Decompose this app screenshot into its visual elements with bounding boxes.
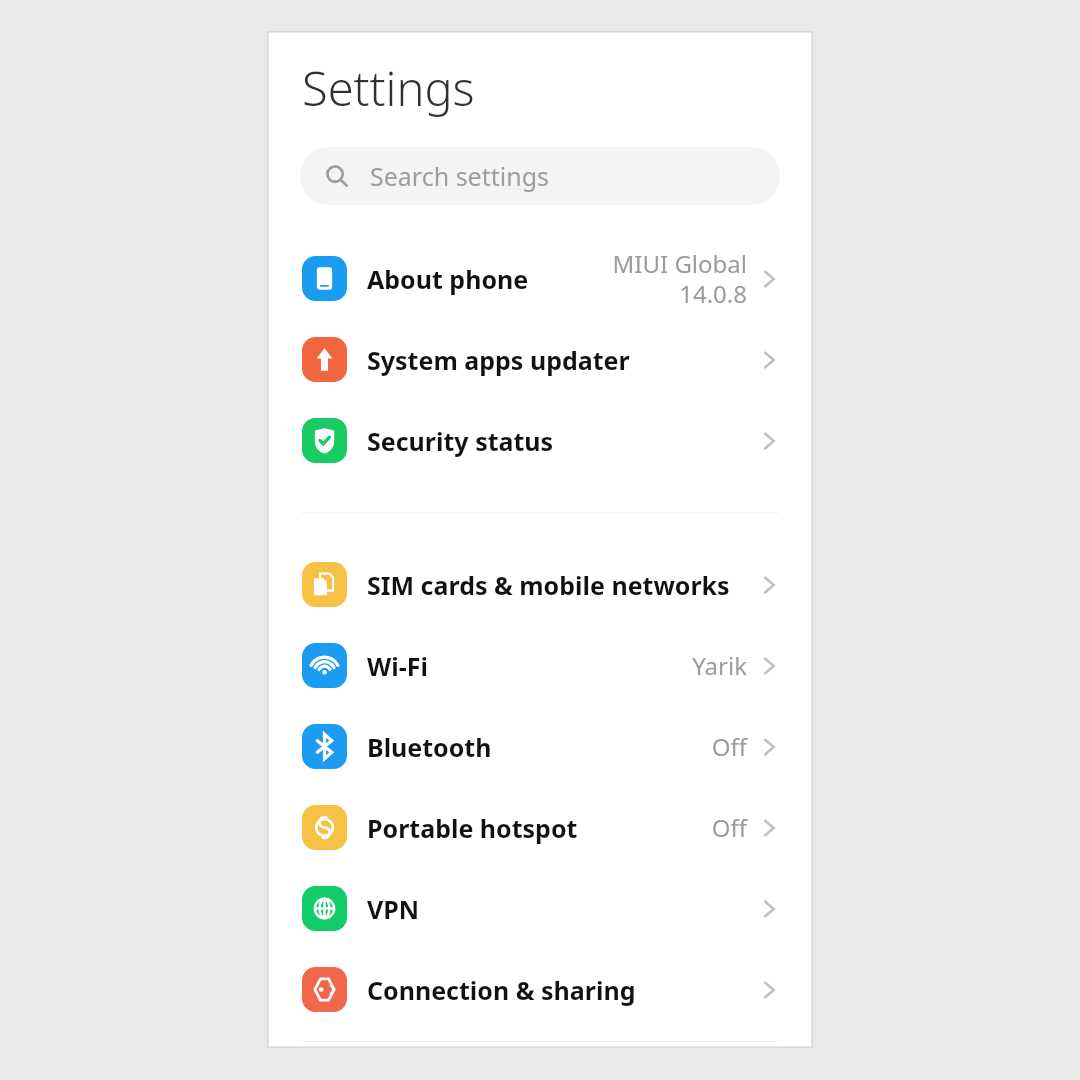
staticText: About phone [367,262,529,296]
staticText: Bluetooth [367,730,492,764]
button[interactable]: Security status [267,400,813,481]
button[interactable]: Connection & sharing [267,949,813,1030]
button[interactable]: Portable hotspot [267,787,813,868]
staticText: VPN [367,892,420,926]
staticText: System apps updater [367,343,630,377]
other: Search [325,164,349,188]
staticText: Wi-Fi [367,649,428,683]
button[interactable]: VPN [267,868,813,949]
staticText: MIUI Global 14.0.8 [612,247,747,310]
button[interactable]: SIM cards & mobile networks [267,544,813,625]
staticText: SIM cards & mobile networks [367,568,730,602]
button[interactable]: Search [300,147,780,205]
staticText: Search settings [370,159,550,193]
button[interactable]: System apps updater [267,319,813,400]
staticText: Yarik [692,649,747,682]
staticText: Off [711,811,747,844]
button[interactable]: Bluetooth [267,706,813,787]
staticText: Security status [367,424,554,458]
staticText: Portable hotspot [367,811,578,845]
button[interactable]: About phone [267,238,813,319]
staticText: Settings [302,56,475,120]
staticText: Connection & sharing [367,973,636,1007]
button[interactable]: Wi-Fi [267,625,813,706]
staticText: Off [711,730,747,763]
